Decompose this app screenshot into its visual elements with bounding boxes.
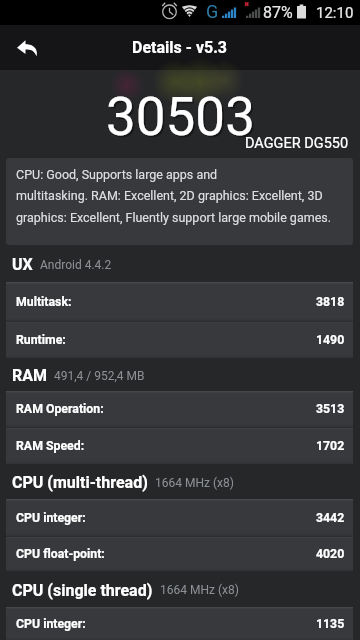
staticText: G (206, 1, 219, 22)
staticText: 12:10 (316, 4, 354, 22)
button[interactable]: CPU integer: (6, 499, 353, 536)
staticText: 30503 (106, 86, 255, 148)
staticText: RAM Operation: (16, 402, 104, 416)
button[interactable]: CPU integer: (6, 607, 353, 640)
staticText: RAM Speed: (16, 439, 85, 453)
button[interactable]: RAM Operation: (6, 391, 353, 427)
staticText: Multitask: (16, 295, 72, 309)
button[interactable]: Multitask: (6, 282, 353, 321)
staticText: Android 4.4.2 (40, 258, 112, 272)
staticText: Runtime: (16, 333, 66, 347)
staticText: CPU float-point: (16, 547, 105, 561)
button[interactable]: CPU float-point: (6, 536, 353, 571)
staticText: CPU (single thread) (12, 581, 153, 600)
staticText: 4020 (316, 547, 345, 561)
staticText: CPU (multi-thread) (12, 473, 148, 492)
staticText: 491,4 / 952,4 MB (54, 369, 145, 383)
button[interactable]: Runtime: (6, 321, 353, 358)
staticText: 1664 MHz (x8) (155, 476, 234, 490)
staticText: 3818 (316, 295, 345, 309)
staticText: CPU: Good, Supports large apps and multi… (16, 167, 332, 225)
staticText: Details - v5.3 (132, 38, 228, 57)
staticText: 30503 (108, 88, 257, 150)
staticText: CPU integer: (16, 511, 86, 525)
staticText: 3442 (316, 511, 345, 525)
staticText: RAM (12, 366, 47, 385)
staticText: 87% (263, 3, 293, 22)
staticText: 1702 (316, 439, 345, 453)
button[interactable]: RAM Speed: (6, 427, 353, 464)
staticText: 3513 (316, 402, 345, 416)
staticText: 1490 (316, 333, 345, 347)
button[interactable]: Back (6, 27, 48, 69)
staticText: 1135 (316, 617, 345, 631)
staticText: DAGGER DG550 (245, 135, 349, 152)
staticText: UX (12, 255, 33, 274)
staticText: 1664 MHz (x8) (160, 583, 239, 597)
staticText: CPU integer: (16, 617, 86, 631)
